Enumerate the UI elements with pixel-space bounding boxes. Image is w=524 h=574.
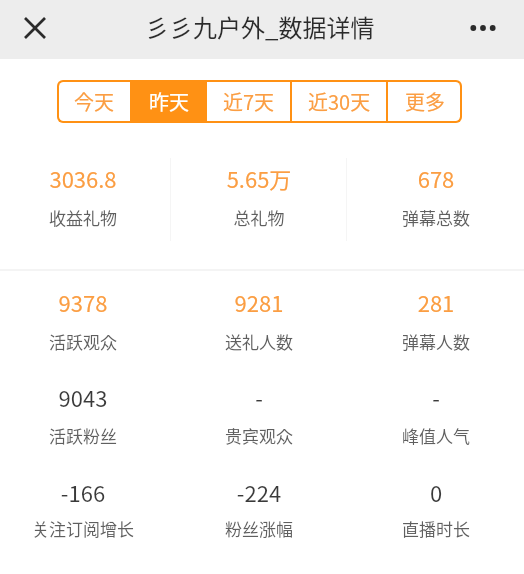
staticText: 送礼人数 bbox=[171, 329, 347, 354]
staticText: 9281 bbox=[171, 286, 347, 318]
button[interactable]: 3036.8 bbox=[0, 154, 171, 244]
staticText: -224 bbox=[171, 476, 347, 508]
button[interactable]: -224 bbox=[171, 468, 347, 555]
staticText: 总礼物 bbox=[171, 205, 347, 230]
staticText: 粉丝涨幅 bbox=[171, 516, 347, 541]
staticText: 活跃粉丝 bbox=[0, 423, 171, 448]
staticText: - bbox=[171, 381, 347, 413]
staticText: 贵宾观众 bbox=[171, 423, 347, 448]
button[interactable]: 5.65万 bbox=[171, 154, 347, 244]
staticText: 9378 bbox=[0, 286, 171, 318]
staticText: 0 bbox=[348, 476, 524, 508]
staticText: -166 bbox=[0, 476, 171, 508]
button[interactable]: -166 bbox=[0, 468, 171, 555]
staticText: 9043 bbox=[0, 381, 171, 413]
staticText: 昨天 bbox=[149, 87, 189, 116]
button[interactable]: 9043 bbox=[0, 373, 171, 462]
staticText: - bbox=[348, 381, 524, 413]
button[interactable]: 678 bbox=[348, 154, 524, 244]
button[interactable]: 近7天 bbox=[206, 80, 291, 123]
staticText: 5.65万 bbox=[171, 162, 347, 194]
staticText: 弹幕人数 bbox=[348, 329, 524, 354]
button[interactable]: 今天 bbox=[57, 80, 131, 123]
staticText: 关注订阅增长 bbox=[0, 516, 171, 541]
staticText: 近30天 bbox=[308, 87, 371, 116]
staticText: 更多 bbox=[405, 87, 445, 116]
staticText: 今天 bbox=[74, 87, 114, 116]
staticText: 281 bbox=[348, 286, 524, 318]
staticText: 彡彡九户外_数据详情 bbox=[145, 9, 375, 44]
staticText: 峰值人气 bbox=[348, 423, 524, 448]
button[interactable]: 9281 bbox=[171, 278, 347, 368]
button[interactable]: 0 bbox=[348, 468, 524, 555]
button[interactable]: More options bbox=[459, 4, 507, 52]
button[interactable]: - bbox=[348, 373, 524, 462]
button[interactable]: 281 bbox=[348, 278, 524, 368]
staticText: 3036.8 bbox=[0, 162, 171, 194]
staticText: 活跃观众 bbox=[0, 329, 171, 354]
button[interactable]: Close bbox=[11, 4, 59, 52]
button[interactable]: 9378 bbox=[0, 278, 171, 368]
staticText: 678 bbox=[348, 162, 524, 194]
staticText: 近7天 bbox=[223, 87, 275, 116]
button[interactable]: - bbox=[171, 373, 347, 462]
staticText: 收益礼物 bbox=[0, 205, 171, 230]
button[interactable]: 近30天 bbox=[291, 80, 387, 123]
staticText: 直播时长 bbox=[348, 516, 524, 541]
staticText: 弹幕总数 bbox=[348, 205, 524, 230]
button[interactable]: 昨天 bbox=[131, 80, 206, 123]
button[interactable]: 更多 bbox=[387, 80, 462, 123]
